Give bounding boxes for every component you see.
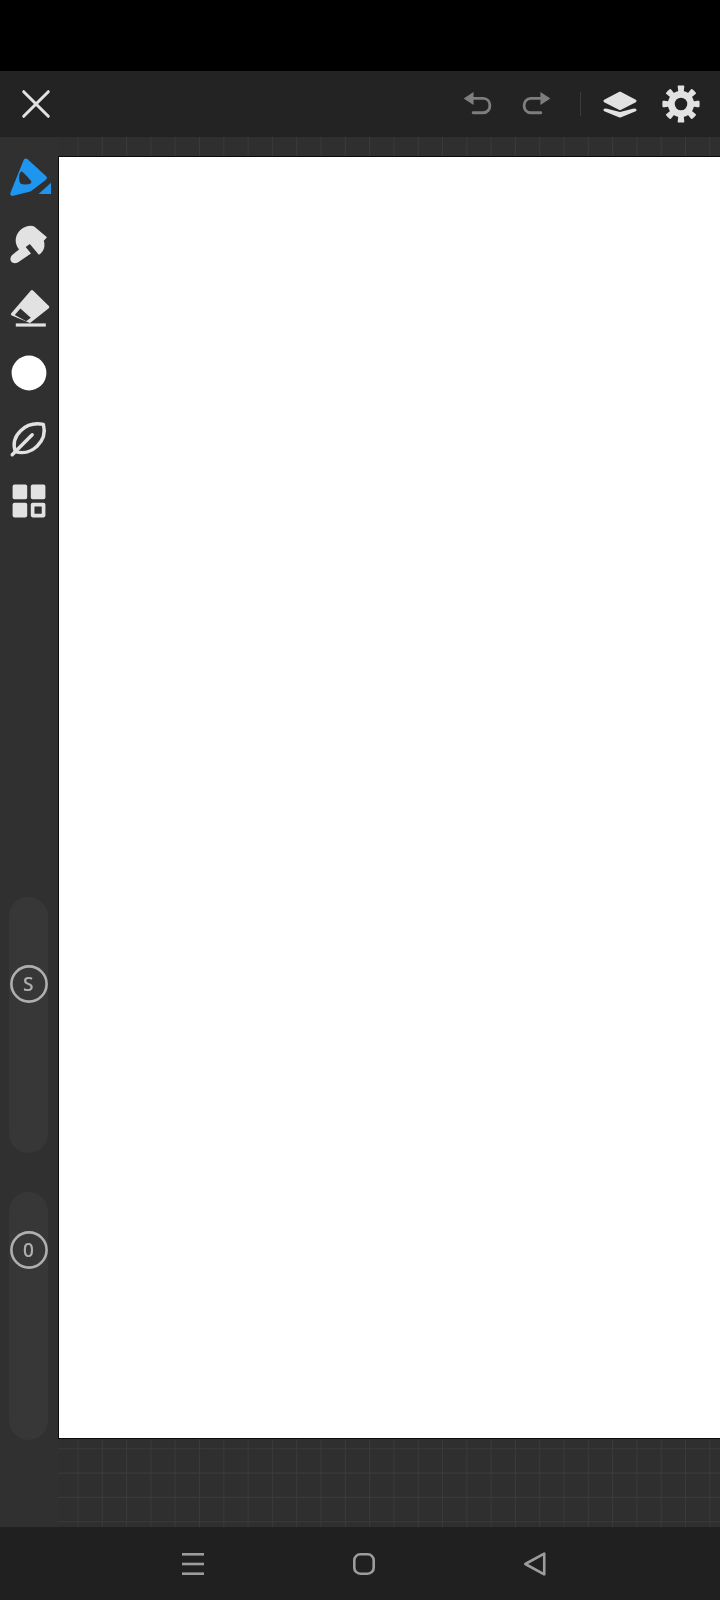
button[interactable]: Settings xyxy=(654,71,708,137)
button[interactable]: Filters xyxy=(0,406,58,470)
button[interactable]: Back xyxy=(500,1527,570,1600)
button[interactable]: Layers xyxy=(593,71,647,137)
staticText: 0 xyxy=(23,1237,34,1263)
button[interactable]: Brush xyxy=(0,146,58,210)
button[interactable]: Slider 0 xyxy=(9,1192,48,1440)
button[interactable]: Home xyxy=(329,1527,399,1600)
button[interactable]: Redo xyxy=(507,71,561,137)
button[interactable]: Close xyxy=(8,71,64,137)
button[interactable]: Slider S xyxy=(9,897,48,1153)
button[interactable]: Recent apps xyxy=(158,1527,228,1600)
button[interactable]: Undo xyxy=(453,71,507,137)
button[interactable]: Tools xyxy=(0,469,58,533)
button[interactable]: Eraser xyxy=(0,276,58,340)
button[interactable]: Smudge xyxy=(0,212,58,276)
staticText: S xyxy=(23,971,34,997)
button[interactable]: Color xyxy=(0,341,58,405)
